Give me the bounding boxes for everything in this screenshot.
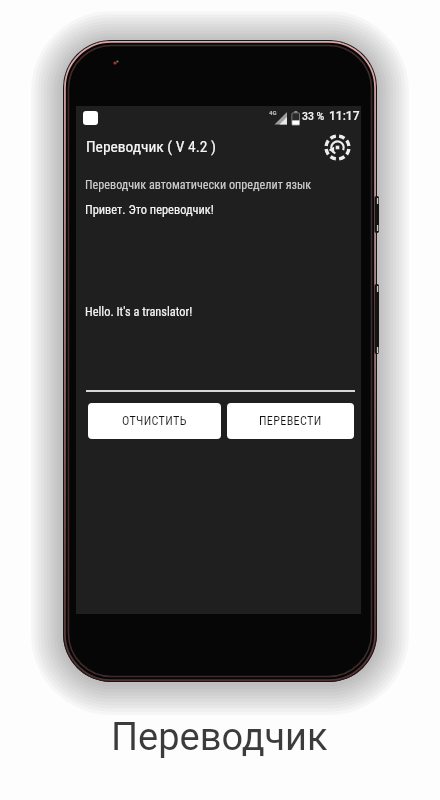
staticText: ОТЧИСТИТЬ [122,414,187,428]
staticText: ПЕРЕВЕСТИ [259,414,322,428]
button[interactable] [321,131,354,164]
staticText: Hello. It's a translator! [85,304,193,319]
staticText: Привет. Это переводчик! [85,202,214,217]
staticText: Переводчик автоматически определит язык [85,178,312,192]
button[interactable]: ПЕРЕВЕСТИ [227,403,354,439]
staticText: Переводчик [111,715,328,760]
staticText: 4G [269,109,277,116]
staticText: Переводчик ( V 4.2 ) [86,138,216,156]
staticText: 33 % [302,110,325,122]
staticText: 11:17 [329,109,360,123]
button[interactable]: ОТЧИСТИТЬ [88,403,221,439]
